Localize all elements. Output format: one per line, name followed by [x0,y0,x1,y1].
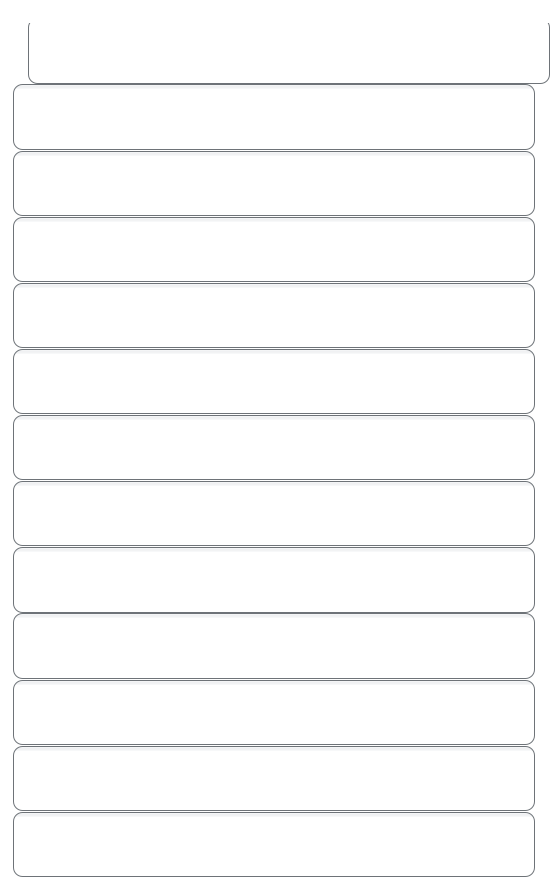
button[interactable]: List item [13,812,534,876]
button[interactable]: List item [13,349,534,413]
button[interactable]: List item [13,481,534,545]
button[interactable]: List item [13,613,534,678]
button[interactable]: List item [13,217,534,281]
button[interactable]: List item [13,151,534,215]
button[interactable]: List item [13,283,534,347]
button[interactable]: List item [28,23,550,84]
button[interactable]: List item [13,547,534,612]
button[interactable]: List item [13,84,534,149]
button[interactable]: List item [13,415,534,479]
button[interactable]: List item [13,680,534,744]
button[interactable]: List item [13,746,534,810]
